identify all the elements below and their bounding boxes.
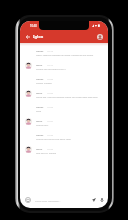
staticText: Where do you want it for ? xyxy=(36,67,66,70)
staticText: 10:32 xyxy=(47,147,54,150)
staticText: 10:27 xyxy=(47,119,54,122)
button[interactable]: Write your message... xyxy=(20,195,108,205)
staticText: Igloo xyxy=(36,91,43,94)
staticText: Within a week xyxy=(36,81,52,84)
staticText: See you in. Please xyxy=(36,151,56,154)
button[interactable]: Hailey xyxy=(20,131,108,145)
staticText: Thank you. xyxy=(36,123,49,126)
staticText: Good life. Can you please check on order… xyxy=(36,95,98,98)
staticText: Sure xyxy=(36,109,42,112)
staticText: Igloo xyxy=(36,63,43,66)
staticText: Igloo xyxy=(36,119,43,122)
button[interactable]: Igloo xyxy=(20,117,108,131)
staticText: 10:22 xyxy=(47,91,54,94)
staticText: Hailey xyxy=(36,49,44,52)
button[interactable]: Back xyxy=(22,31,33,42)
staticText: 10:25 xyxy=(47,105,54,108)
button[interactable]: Igloo xyxy=(20,145,108,159)
staticText: 10:20 xyxy=(47,77,54,80)
button[interactable]: Igloo xyxy=(20,61,108,75)
button[interactable]: Send xyxy=(90,196,98,204)
staticText: 10:17 xyxy=(47,63,54,66)
button[interactable]: Voice message xyxy=(98,196,106,204)
staticText: Hailey xyxy=(36,77,44,80)
staticText: 10:30 xyxy=(47,133,54,136)
staticText: Hailey xyxy=(36,133,44,136)
button[interactable]: Profile xyxy=(97,34,103,40)
staticText: Thank you all for the work now xyxy=(36,137,71,140)
button[interactable]: Hailey xyxy=(20,75,108,89)
button[interactable]: Igloo xyxy=(20,89,108,103)
staticText: 10:15 xyxy=(47,49,54,52)
staticText: Write your message... xyxy=(35,199,61,202)
button[interactable]: Hailey xyxy=(20,103,108,117)
button[interactable]: Hailey xyxy=(20,47,108,61)
staticText: Hey! I need to provide all good. Please … xyxy=(36,53,94,56)
staticText: 10:30 xyxy=(30,24,37,28)
staticText: Hailey xyxy=(36,105,44,108)
staticText: Igloo xyxy=(36,147,43,150)
staticText: Igloo xyxy=(33,34,44,39)
